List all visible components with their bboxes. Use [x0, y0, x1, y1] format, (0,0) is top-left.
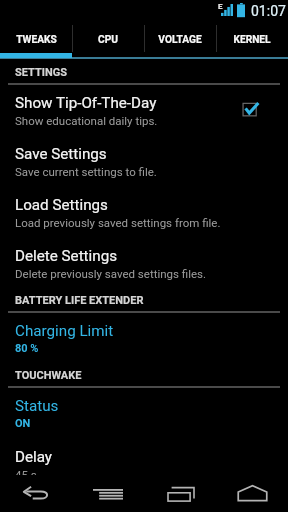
- staticText: TOUCHWAKE: [15, 369, 82, 382]
- button[interactable]: Charging Limit: [0, 313, 288, 364]
- staticText: Show Tip-Of-The-Day: [15, 94, 157, 112]
- staticText: 45 s: [15, 468, 37, 481]
- staticText: 80 %: [15, 342, 39, 355]
- staticText: SETTINGS: [15, 66, 67, 79]
- staticText: KERNEL: [233, 34, 271, 46]
- button[interactable]: Show Tip-Of-The-Day: [0, 85, 288, 136]
- staticText: VOLTAGE: [158, 34, 202, 46]
- staticText: Show educational daily tips.: [15, 114, 158, 127]
- button[interactable]: CPU: [72, 20, 144, 54]
- button[interactable]: Back: [0, 475, 72, 512]
- button[interactable]: Delete Settings: [0, 238, 288, 289]
- staticText: Save current settings to file.: [15, 165, 157, 178]
- staticText: Save Settings: [15, 145, 107, 163]
- staticText: Load Settings: [15, 196, 108, 214]
- button[interactable]: Home: [216, 475, 288, 512]
- staticText: Charging Limit: [15, 322, 114, 340]
- button[interactable]: Load Settings: [0, 187, 288, 238]
- button[interactable]: Save Settings: [0, 136, 288, 187]
- staticText: CPU: [98, 34, 118, 46]
- button[interactable]: VOLTAGE: [144, 20, 216, 54]
- staticText: ON: [15, 417, 31, 430]
- button[interactable]: Delay: [0, 439, 288, 490]
- button[interactable]: Menu: [72, 475, 144, 512]
- staticText: BATTERY LIFE EXTENDER: [15, 294, 144, 307]
- staticText: 01:07: [251, 3, 286, 19]
- staticText: TWEAKS: [16, 34, 57, 46]
- button[interactable]: Recent apps: [144, 475, 216, 512]
- button[interactable]: Status: [0, 388, 288, 439]
- staticText: Load previously saved settings from file…: [15, 216, 221, 229]
- staticText: Delete previously saved settings files.: [15, 267, 207, 280]
- staticText: Delay: [15, 448, 53, 466]
- button[interactable]: TWEAKS: [0, 20, 72, 54]
- staticText: E: [218, 2, 223, 11]
- staticText: Status: [15, 397, 59, 415]
- staticText: Delete Settings: [15, 247, 118, 265]
- button[interactable]: KERNEL: [216, 20, 288, 54]
